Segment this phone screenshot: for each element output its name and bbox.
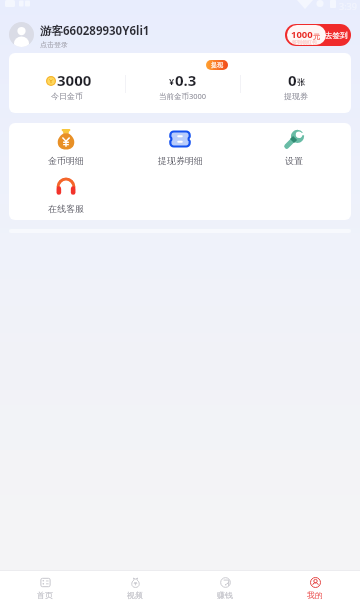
button[interactable]: 1000 xyxy=(285,24,351,46)
staticText: 去签到 xyxy=(325,31,348,40)
staticText: 0.3 xyxy=(175,70,197,90)
staticText: 赚钱 xyxy=(217,590,233,600)
button[interactable]: 0 xyxy=(240,53,351,113)
staticText: 提现券明细 xyxy=(158,155,203,166)
staticText: 设置 xyxy=(285,155,303,166)
button[interactable]: 赚钱 xyxy=(180,571,270,600)
staticText: ¥ xyxy=(169,75,175,87)
button[interactable]: Avatar xyxy=(9,22,34,47)
button[interactable]: 在线客服 xyxy=(9,171,123,220)
staticText: 0 xyxy=(288,70,297,90)
staticText: 首页 xyxy=(37,590,53,600)
button[interactable]: 金币明细 xyxy=(9,123,123,171)
staticText: 点击登录 xyxy=(40,40,68,49)
staticText: 3000 xyxy=(57,70,92,90)
staticText: 视频 xyxy=(127,590,143,600)
button[interactable]: 提现券明细 xyxy=(123,123,237,171)
staticText: 张 xyxy=(297,77,305,87)
staticText: 今日金币 xyxy=(51,91,83,101)
staticText: 当前金币3000 xyxy=(159,91,207,101)
staticText: 1000 xyxy=(291,28,313,41)
staticText: 金币明细 xyxy=(48,155,84,166)
button[interactable]: 提现 xyxy=(206,60,228,70)
button[interactable]: 我的 xyxy=(270,571,360,600)
staticText: 提现 xyxy=(211,61,223,69)
button[interactable]: 3000 xyxy=(9,53,125,113)
staticText: 签到领红包 xyxy=(292,39,317,45)
button[interactable]: 设置 xyxy=(237,123,351,171)
button[interactable]: ¥ xyxy=(125,53,240,113)
button[interactable]: 首页 xyxy=(0,571,90,600)
staticText: 游客660289930Y6li1 xyxy=(40,23,150,39)
staticText: 3:39 xyxy=(339,0,357,12)
staticText: 提现券 xyxy=(284,91,308,101)
staticText: 我的 xyxy=(307,590,323,600)
staticText: 元 xyxy=(313,32,320,41)
button[interactable]: 视频 xyxy=(90,571,180,600)
staticText: 在线客服 xyxy=(48,203,84,214)
